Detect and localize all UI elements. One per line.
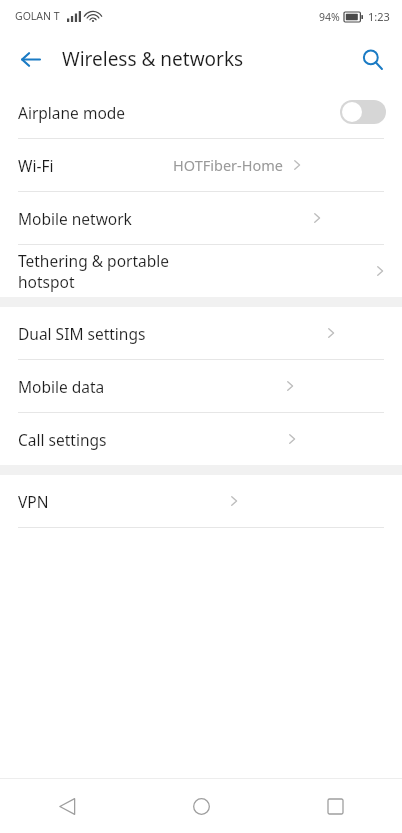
button[interactable]: VPN — [0, 475, 402, 527]
button[interactable]: Recent apps — [268, 779, 402, 833]
button[interactable]: Dual SIM settings — [0, 307, 402, 359]
staticText: VPN — [18, 491, 49, 512]
staticText: HOTFiber-Home — [173, 155, 283, 175]
button[interactable]: Mobile network — [0, 192, 402, 244]
staticText: Dual SIM settings — [18, 323, 146, 344]
button[interactable]: Search — [350, 37, 394, 81]
staticText: Wireless & networks — [62, 46, 244, 72]
staticText: Call settings — [18, 429, 107, 450]
staticText: Wi-Fi — [18, 155, 54, 176]
staticText: 1:23 — [368, 9, 390, 24]
button[interactable]: Tethering & portable hotspot — [0, 245, 402, 297]
staticText: Tethering & portable hotspot — [18, 250, 195, 292]
staticText: Mobile network — [18, 208, 132, 229]
button[interactable]: Airplane mode — [0, 86, 402, 138]
button[interactable]: Back — [8, 37, 52, 81]
button[interactable]: Back — [0, 779, 134, 833]
button[interactable]: Wi-Fi — [0, 139, 402, 191]
button[interactable]: Call settings — [0, 413, 402, 465]
staticText: Mobile data — [18, 376, 105, 397]
staticText: 94% — [319, 10, 340, 24]
button[interactable]: Mobile data — [0, 360, 402, 412]
button[interactable]: Home — [134, 779, 268, 833]
staticText: Airplane mode — [18, 102, 126, 123]
staticText: GOLAN T — [15, 9, 60, 23]
